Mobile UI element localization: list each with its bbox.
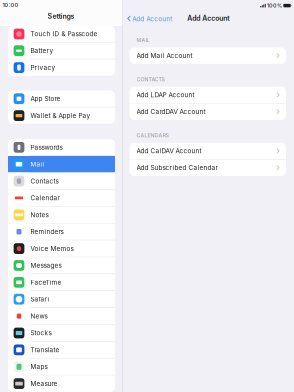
staticText: MAIL xyxy=(137,37,150,43)
button[interactable]: Measure xyxy=(8,375,115,392)
button[interactable]: Voice Memos xyxy=(8,240,115,257)
button[interactable]: Touch ID & Passcode xyxy=(8,26,115,42)
staticText: Voice Memos xyxy=(30,245,73,252)
button[interactable]: Stocks xyxy=(8,325,115,341)
button[interactable]: Add CalDAV Account xyxy=(130,143,286,159)
staticText: Battery xyxy=(30,47,53,54)
staticText: Reminders xyxy=(30,228,63,235)
button[interactable]: Maps xyxy=(8,359,115,375)
button[interactable]: Privacy xyxy=(8,59,115,76)
staticText: News xyxy=(30,312,47,320)
staticText: App Store xyxy=(30,95,60,103)
button[interactable]: Translate xyxy=(8,342,115,358)
staticText: Safari xyxy=(30,295,49,303)
button[interactable]: Safari xyxy=(8,291,115,307)
staticText: Contacts xyxy=(30,177,58,185)
staticText: Add Mail Account xyxy=(137,52,193,59)
staticText: Measure xyxy=(30,380,57,387)
button[interactable]: Notes xyxy=(8,207,115,223)
staticText: Add CalDAV Account xyxy=(137,147,202,155)
staticText: Add CardDAV Account xyxy=(137,108,206,116)
button[interactable]: Add LDAP Account xyxy=(130,87,286,103)
staticText: CALENDARS xyxy=(137,132,169,138)
button[interactable]: Add Mail Account xyxy=(130,47,286,64)
staticText: FaceTime xyxy=(30,278,61,286)
staticText: Settings xyxy=(47,12,74,20)
staticText: Privacy xyxy=(30,64,55,71)
staticText: Messages xyxy=(30,262,61,269)
staticText: Maps xyxy=(30,363,47,371)
button[interactable]: Messages xyxy=(8,257,115,274)
staticText: Add Subscribed Calendar xyxy=(137,164,218,172)
staticText: Add Account xyxy=(187,14,229,22)
button[interactable]: Add Account xyxy=(127,14,172,23)
staticText: Add Account xyxy=(132,15,172,23)
staticText: 10:00 xyxy=(3,2,19,8)
staticText: Touch ID & Passcode xyxy=(30,30,97,38)
button[interactable]: App Store xyxy=(8,91,115,107)
staticText: Passwords xyxy=(30,143,62,151)
staticText: 100% xyxy=(267,2,282,9)
button[interactable]: FaceTime xyxy=(8,274,115,291)
button[interactable]: Mail xyxy=(8,156,115,172)
button[interactable]: Wallet & Apple Pay xyxy=(8,107,115,124)
staticText: Wallet & Apple Pay xyxy=(30,112,90,119)
button[interactable]: Contacts xyxy=(8,173,115,189)
button[interactable]: Reminders xyxy=(8,223,115,240)
staticText: CONTACTS xyxy=(137,76,165,82)
button[interactable]: Add CardDAV Account xyxy=(130,103,286,120)
button[interactable]: Add Subscribed Calendar xyxy=(130,160,286,176)
button[interactable]: Passwords xyxy=(8,139,115,155)
staticText: Add LDAP Account xyxy=(137,91,195,99)
button[interactable]: Calendar xyxy=(8,190,115,206)
staticText: Notes xyxy=(30,211,48,219)
staticText: Stocks xyxy=(30,329,51,337)
staticText: Mail xyxy=(30,160,44,168)
staticText: Translate xyxy=(30,346,59,354)
staticText: Calendar xyxy=(30,194,59,202)
button[interactable]: News xyxy=(8,308,115,324)
button[interactable]: Battery xyxy=(8,42,115,59)
